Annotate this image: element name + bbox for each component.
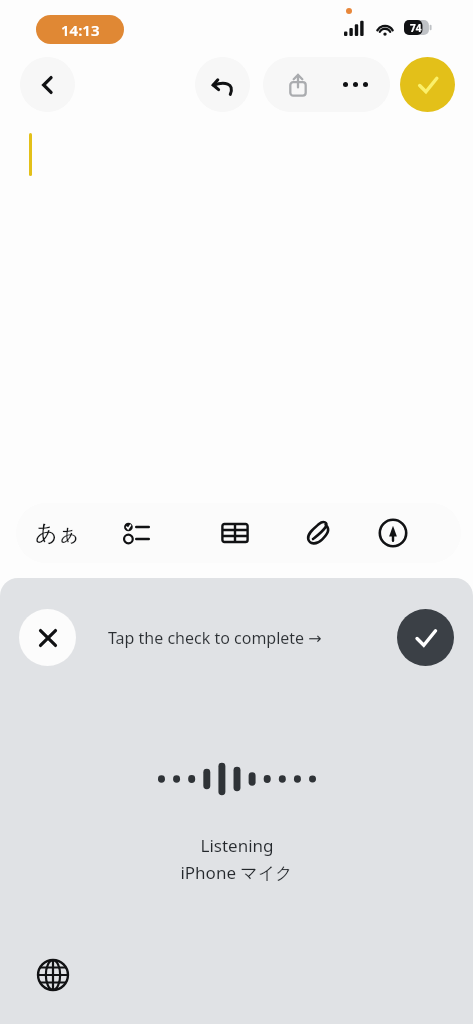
button[interactable]: Share — [270, 57, 325, 112]
button[interactable]: Complete — [397, 609, 454, 666]
button[interactable]: More options — [328, 57, 383, 112]
staticText: Tap the check to complete → — [108, 627, 322, 649]
staticText: 74 — [410, 21, 422, 35]
button[interactable]: Undo — [195, 57, 250, 112]
button[interactable]: Table — [205, 503, 265, 563]
button[interactable]: Done — [400, 57, 455, 112]
button[interactable]: Draw — [363, 503, 423, 563]
staticText: あぁ — [35, 519, 81, 547]
staticText: Listening — [200, 834, 274, 857]
staticText: iPhone マイク — [180, 861, 293, 884]
staticText: 14:13 — [61, 20, 100, 40]
button[interactable]: Language — [28, 950, 78, 1000]
button[interactable]: Checklist — [108, 503, 168, 563]
button[interactable]: Back — [20, 57, 75, 112]
button[interactable]: Close — [19, 609, 76, 666]
button[interactable]: Attach — [289, 503, 349, 563]
button[interactable]: Text format — [28, 503, 88, 563]
